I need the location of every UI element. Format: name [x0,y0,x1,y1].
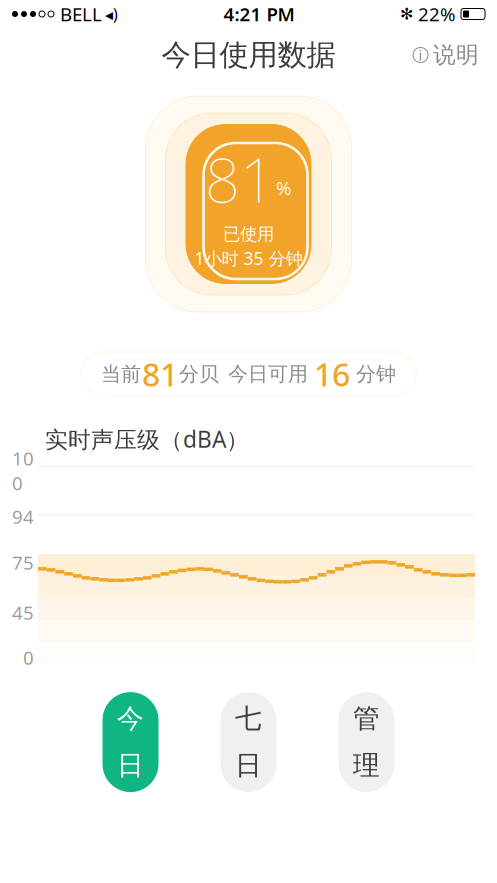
staticText: 日 [117,749,144,782]
staticText: 94 [12,504,34,529]
staticText: 16 [314,353,350,395]
staticText: 说明 [433,41,479,69]
staticText: 今 [117,702,144,735]
staticText: 1小时 35 分钟 [194,247,302,270]
staticText: 实时声压级（dBA） [45,424,249,454]
button[interactable]: 今 [102,692,158,792]
staticText: 今日使用数据 [161,37,335,73]
staticText: i [418,45,422,65]
staticText: ◂) [105,3,118,25]
staticText: 已使用 [223,224,274,245]
staticText: 81 [205,138,275,219]
staticText: 今日可用 [228,362,308,386]
staticText: 100 [12,446,34,495]
staticText: 分钟 [356,362,396,386]
staticText: % [276,175,292,200]
staticText: 理 [353,749,380,782]
button[interactable]: 管 [338,692,394,792]
staticText: 0 [23,645,34,670]
staticText: BELL [60,2,102,26]
staticText: 4:21 PM [223,2,294,26]
staticText: 分贝 [179,362,219,386]
staticText: 管 [353,702,380,735]
staticText: 当前 [101,362,141,386]
staticText: 45 [12,600,34,625]
staticText: ✻ [400,5,413,23]
staticText: 75 [12,550,34,575]
staticText: 日 [235,749,262,782]
staticText: 22% [418,2,456,26]
button[interactable]: 七 [220,692,276,792]
button[interactable]: i [403,33,489,77]
staticText: 七 [235,702,262,735]
staticText: 81 [142,353,178,395]
